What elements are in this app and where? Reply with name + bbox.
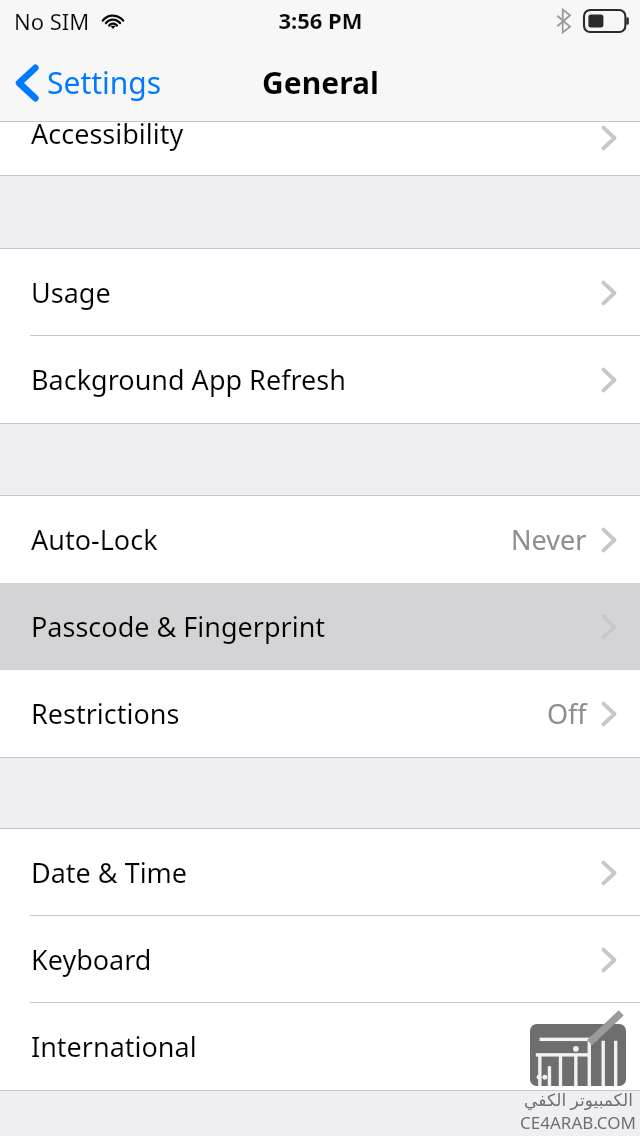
staticText: Auto-Lock <box>31 521 158 558</box>
staticText: Accessibility <box>31 122 184 152</box>
button[interactable]: Restrictions <box>0 670 640 757</box>
button[interactable]: Keyboard <box>0 916 640 1003</box>
staticText: Background App Refresh <box>31 361 346 398</box>
staticText: No SIM <box>14 6 90 36</box>
staticText: Date & Time <box>31 854 188 891</box>
staticText: Settings <box>47 62 162 103</box>
staticText: Restrictions <box>31 695 180 732</box>
staticText: Never <box>511 521 587 558</box>
button[interactable]: Passcode & Fingerprint <box>0 583 640 670</box>
staticText: CE4ARAB.COM <box>520 1111 636 1134</box>
staticText: International <box>31 1028 197 1065</box>
button[interactable]: Settings <box>0 54 178 111</box>
button[interactable]: Usage <box>0 249 640 336</box>
button[interactable]: Auto-Lock <box>0 496 640 583</box>
staticText: الكمبيوتر الكفي <box>524 1088 633 1111</box>
staticText: Passcode & Fingerprint <box>31 608 326 645</box>
button[interactable]: Date & Time <box>0 829 640 916</box>
button[interactable]: International <box>0 1003 640 1090</box>
staticText: 3:56 PM <box>278 5 363 35</box>
button[interactable]: Background App Refresh <box>0 336 640 423</box>
button[interactable]: Accessibility <box>0 122 640 176</box>
staticText: General <box>262 62 379 103</box>
staticText: Off <box>547 695 587 732</box>
staticText: Keyboard <box>31 941 152 978</box>
staticText: Usage <box>31 274 111 311</box>
